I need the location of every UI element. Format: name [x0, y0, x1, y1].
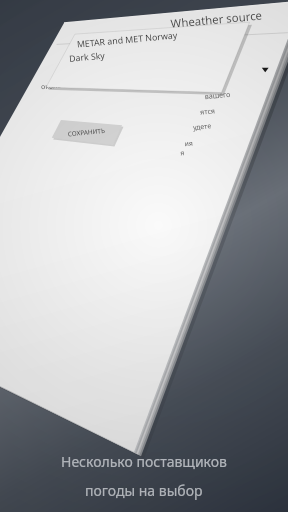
button[interactable]: Weather source screen preview — [0, 0, 288, 512]
